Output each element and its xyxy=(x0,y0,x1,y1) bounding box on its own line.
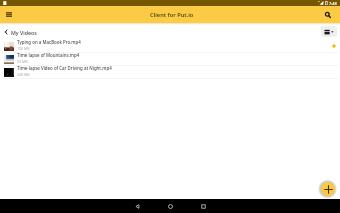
staticText: 53 MB xyxy=(17,59,28,64)
button[interactable]: My Videos xyxy=(3,26,37,38)
staticText: 240 MB xyxy=(17,72,30,77)
staticText: Client for Put.io xyxy=(150,11,194,19)
button[interactable]: Recent apps xyxy=(187,199,220,213)
button[interactable]: Open navigation menu xyxy=(3,9,14,20)
staticText: 126 MB xyxy=(17,46,30,51)
staticText: Time-lapse Video of Car Driving at Night… xyxy=(17,65,112,71)
button[interactable]: Change view and sort options xyxy=(321,26,337,37)
button[interactable]: Time-lapse Video of Car Driving at Night… xyxy=(0,66,340,78)
button[interactable]: Home xyxy=(154,199,187,213)
button[interactable]: Typing on a MacBook Pro.mp4 xyxy=(0,40,340,52)
staticText: Time lapse of Mountains.mp4 xyxy=(17,52,80,58)
button[interactable]: Search xyxy=(322,9,333,20)
staticText: 7:48 xyxy=(329,1,337,6)
button[interactable]: Add xyxy=(321,182,335,196)
staticText: My Videos xyxy=(11,29,37,36)
button[interactable]: Back xyxy=(121,199,154,213)
button[interactable]: Time lapse of Mountains.mp4 xyxy=(0,53,340,65)
staticText: Typing on a MacBook Pro.mp4 xyxy=(17,39,81,45)
